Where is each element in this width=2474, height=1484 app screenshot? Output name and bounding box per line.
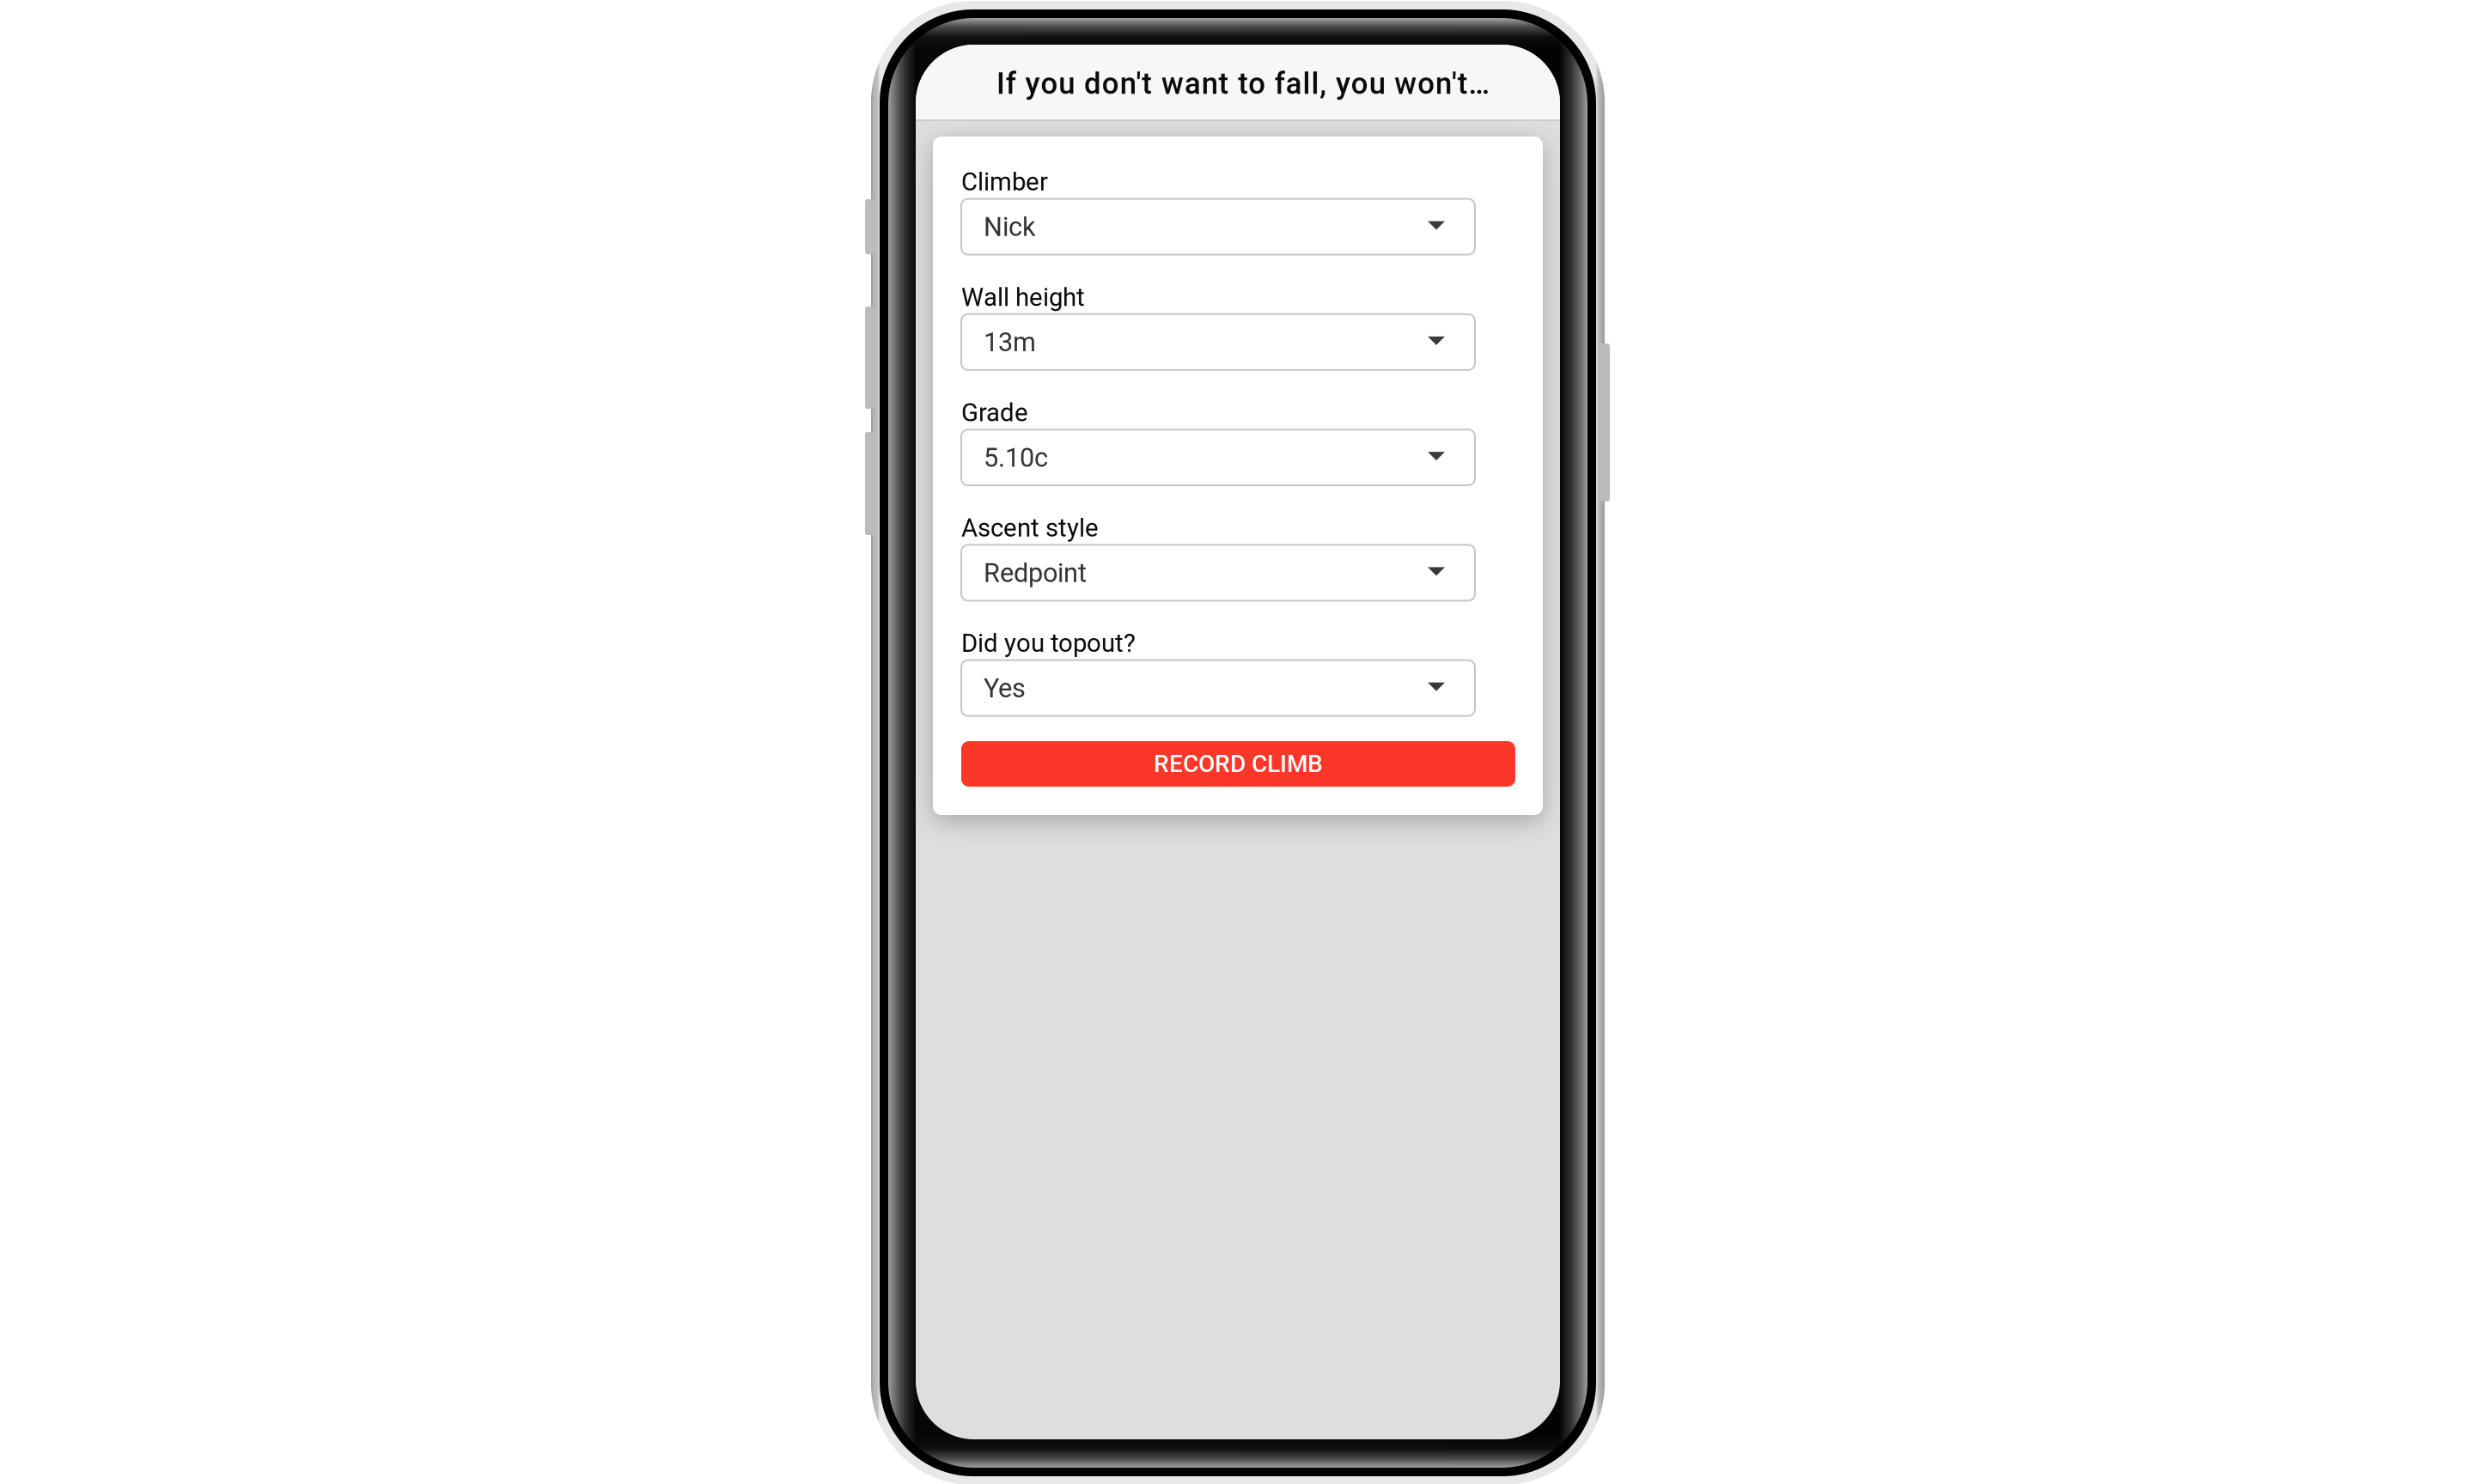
button[interactable]: RECORD CLIMB xyxy=(961,741,1515,787)
staticText: Ascent style xyxy=(961,513,1099,543)
button[interactable]: Wall height: 13m xyxy=(961,314,1475,370)
staticText: Nick xyxy=(984,212,1036,242)
staticText: Yes xyxy=(984,673,1026,704)
staticText: Grade xyxy=(961,398,1028,427)
staticText: RECORD CLIMB xyxy=(1154,750,1323,778)
staticText: 5.10c xyxy=(984,442,1048,473)
button[interactable]: Grade: 5.10c xyxy=(961,429,1475,485)
staticText: If you don't want to fall, you won't… xyxy=(996,66,1490,101)
staticText: Redpoint xyxy=(984,558,1087,588)
staticText: Wall height xyxy=(961,282,1085,312)
staticText: Climber xyxy=(961,167,1048,197)
button[interactable]: Ascent style: Redpoint xyxy=(961,545,1475,601)
staticText: 13m xyxy=(984,327,1036,358)
button[interactable]: Did you topout?: Yes xyxy=(961,660,1475,716)
staticText: Did you topout? xyxy=(961,628,1136,658)
button[interactable]: Climber: Nick xyxy=(961,199,1475,255)
